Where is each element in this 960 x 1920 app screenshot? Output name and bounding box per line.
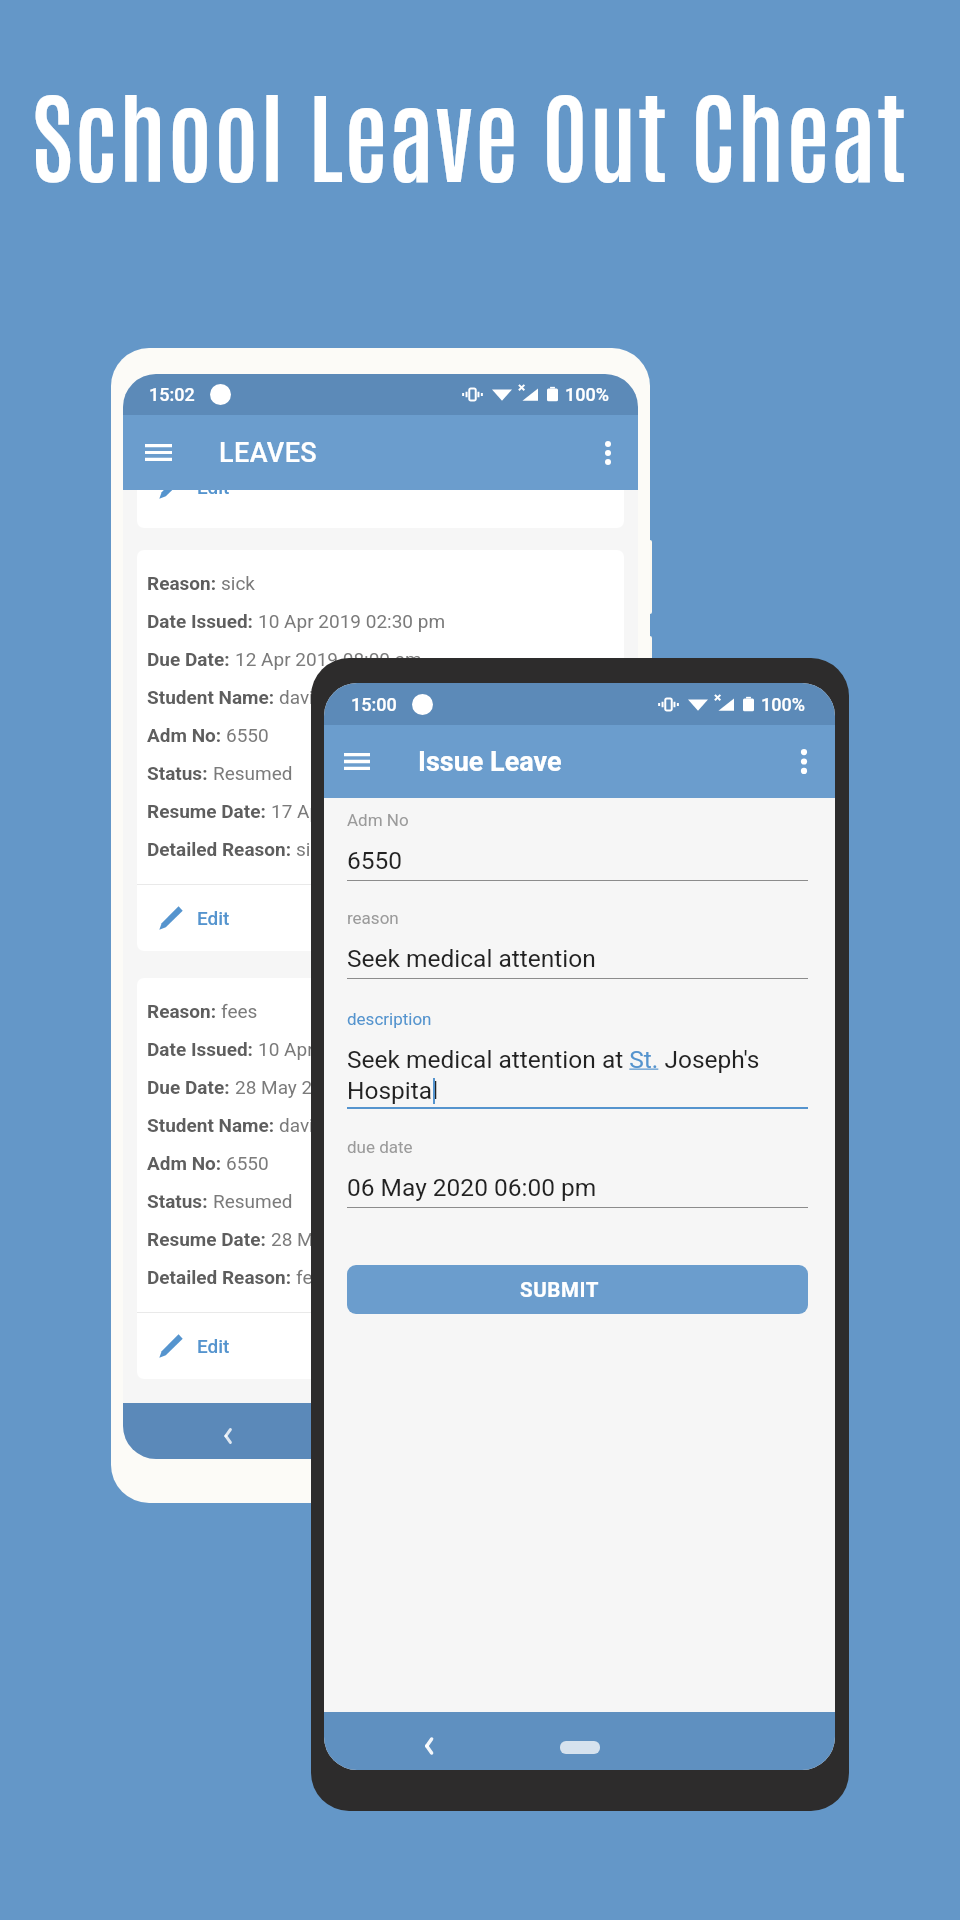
staticText: david (279, 686, 325, 708)
staticText: Edit (197, 907, 230, 929)
staticText: 15:02 (149, 384, 195, 405)
staticText: Seek medical attention at St. Joseph's H… (347, 1045, 760, 1105)
staticText: reason (347, 908, 399, 928)
staticText: LEAVES (219, 437, 318, 469)
button[interactable]: Reason: (137, 550, 624, 951)
button[interactable]: Back (205, 1414, 249, 1458)
staticText: Due Date: (147, 1076, 235, 1098)
staticText: 6550 (347, 846, 403, 875)
staticText: Resumed (213, 1190, 293, 1212)
staticText: Due Date: (147, 648, 235, 670)
staticText: 10 Apr 2019 02:30 pm (258, 610, 446, 632)
staticText: Date Issued: (147, 1038, 258, 1060)
staticText: Resume Date: (147, 800, 271, 822)
button[interactable]: description (347, 1009, 808, 1109)
staticText: sick leave (296, 838, 379, 860)
staticText: fees payment (296, 1266, 411, 1288)
staticText: 15:00 (351, 694, 397, 715)
staticText: School Leave Out Cheat (32, 68, 908, 196)
staticText: Edit (197, 490, 230, 498)
staticText: 28 May 2020 06:00 pm (235, 1076, 429, 1098)
staticText: description (347, 1009, 432, 1029)
button[interactable]: Open navigation menu (344, 753, 370, 770)
staticText: Adm No (347, 810, 409, 830)
button[interactable]: Open navigation menu (145, 444, 172, 461)
staticText: Reason: (147, 572, 221, 594)
button[interactable]: Edit (137, 885, 624, 951)
staticText: 6550 (226, 724, 269, 746)
staticText: Resume Date: (147, 1228, 271, 1250)
staticText: 100% (565, 384, 609, 405)
staticText: Edit (197, 1335, 230, 1357)
staticText: Detailed Reason: (147, 1266, 296, 1288)
staticText: Issue Leave (418, 746, 562, 778)
staticText: Status: (147, 762, 213, 784)
staticText: 100% (761, 694, 805, 715)
staticText: fees (221, 1000, 258, 1022)
button[interactable]: Edit (137, 490, 624, 528)
staticText: Student Name: (147, 1114, 279, 1136)
button[interactable]: More options (598, 441, 618, 465)
button[interactable]: due date (347, 1137, 808, 1208)
button[interactable]: SUBMIT (347, 1265, 808, 1314)
button[interactable]: Home (560, 1741, 600, 1754)
staticText: Adm No: (147, 724, 226, 746)
staticText: 12 Apr 2019 08:00 am (235, 648, 422, 670)
staticText: SUBMIT (520, 1278, 600, 1302)
staticText: Detailed Reason: (147, 838, 296, 860)
staticText: 28 May 2020 06:00 pm (271, 1228, 465, 1250)
staticText: Resumed (213, 762, 293, 784)
button[interactable]: Adm No (347, 810, 808, 881)
staticText: Seek medical attention (347, 944, 596, 973)
staticText: david (279, 1114, 325, 1136)
button[interactable]: Back (406, 1724, 450, 1768)
staticText: due date (347, 1137, 413, 1157)
staticText: Adm No: (147, 1152, 226, 1174)
button[interactable]: Reason: (137, 978, 624, 1379)
staticText: 10 Apr 2020 02:00 pm (258, 1038, 446, 1060)
staticText: 17 Apr 2019 09:00 am (271, 800, 458, 822)
button[interactable]: reason (347, 908, 808, 979)
staticText: 06 May 2020 06:00 pm (347, 1173, 597, 1202)
button[interactable]: Edit (137, 1313, 624, 1379)
staticText: Student Name: (147, 686, 279, 708)
staticText: sick (221, 572, 256, 594)
button[interactable]: More options (794, 749, 814, 774)
staticText: Reason: (147, 1000, 221, 1022)
staticText: 6550 (226, 1152, 269, 1174)
staticText: Date Issued: (147, 610, 258, 632)
staticText: Status: (147, 1190, 213, 1212)
